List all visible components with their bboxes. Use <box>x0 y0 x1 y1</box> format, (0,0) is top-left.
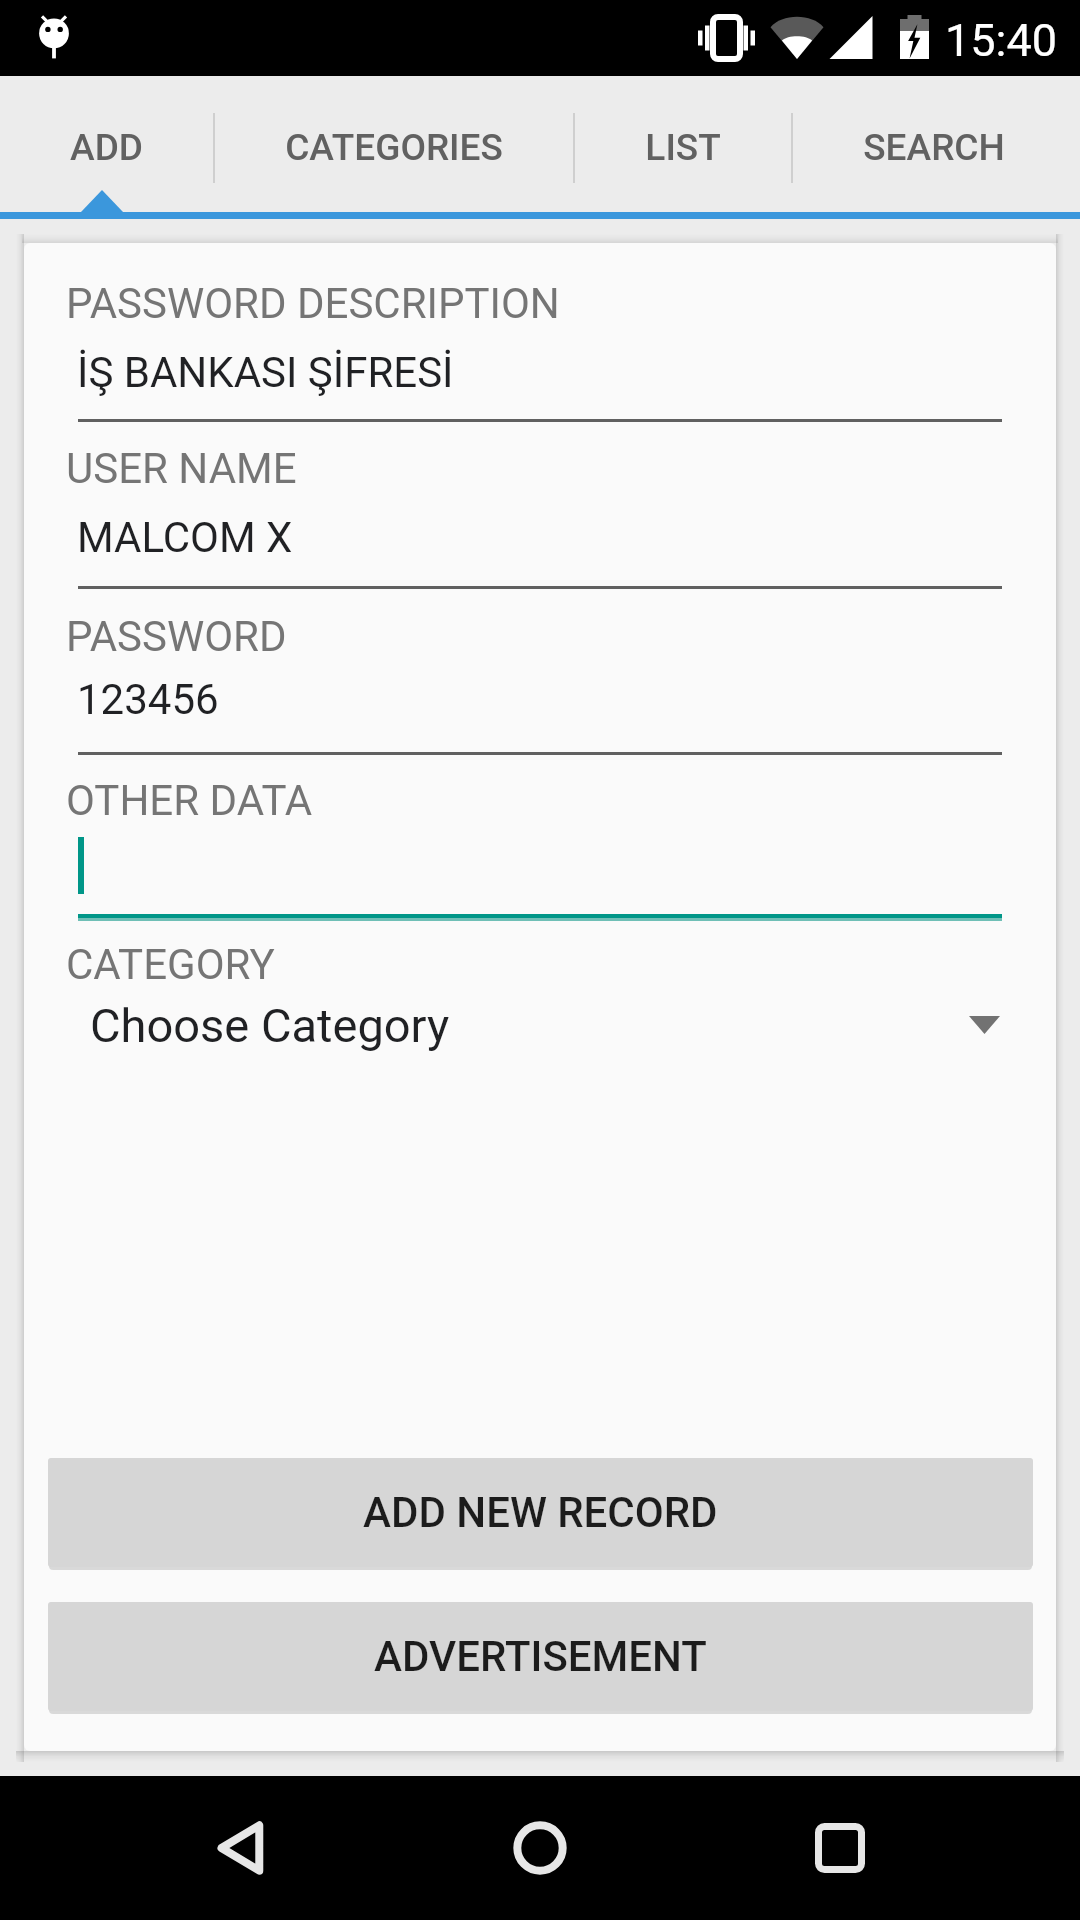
staticText: İŞ BANKASI ŞİFRESİ <box>77 348 454 397</box>
button[interactable]: ADD <box>0 76 213 219</box>
button[interactable]: OTHER DATA <box>78 828 1002 922</box>
staticText: PASSWORD DESCRIPTION <box>66 279 560 328</box>
button[interactable]: PASSWORD DESCRIPTION <box>78 328 1002 422</box>
button[interactable]: ADVERTISEMENT <box>48 1602 1033 1711</box>
button[interactable]: LIST <box>575 76 791 219</box>
staticText: ADD <box>70 126 143 169</box>
staticText: 123456 <box>77 675 219 724</box>
button[interactable]: Back <box>182 1776 302 1920</box>
staticText: 15:40 <box>945 14 1058 67</box>
staticText: MALCOM X <box>77 513 293 562</box>
staticText: ADVERTISEMENT <box>374 1632 707 1681</box>
staticText: OTHER DATA <box>66 776 313 825</box>
staticText: LIST <box>645 126 721 169</box>
button[interactable]: CATEGORIES <box>215 76 573 219</box>
button[interactable]: Choose Category <box>24 985 1056 1081</box>
button[interactable]: PASSWORD <box>78 661 1002 755</box>
staticText: PASSWORD <box>66 612 287 661</box>
button[interactable]: Recent apps <box>780 1776 900 1920</box>
button[interactable]: USER NAME <box>78 495 1002 589</box>
staticText: SEARCH <box>863 126 1005 169</box>
staticText: ADD NEW RECORD <box>363 1488 718 1537</box>
staticText: CATEGORIES <box>285 126 503 169</box>
button[interactable]: ADD NEW RECORD <box>48 1458 1033 1567</box>
button[interactable]: Home <box>480 1776 600 1920</box>
staticText: USER NAME <box>66 444 297 493</box>
staticText: Choose Category <box>90 998 450 1053</box>
button[interactable]: SEARCH <box>793 76 1075 219</box>
staticText: CATEGORY <box>66 940 275 989</box>
